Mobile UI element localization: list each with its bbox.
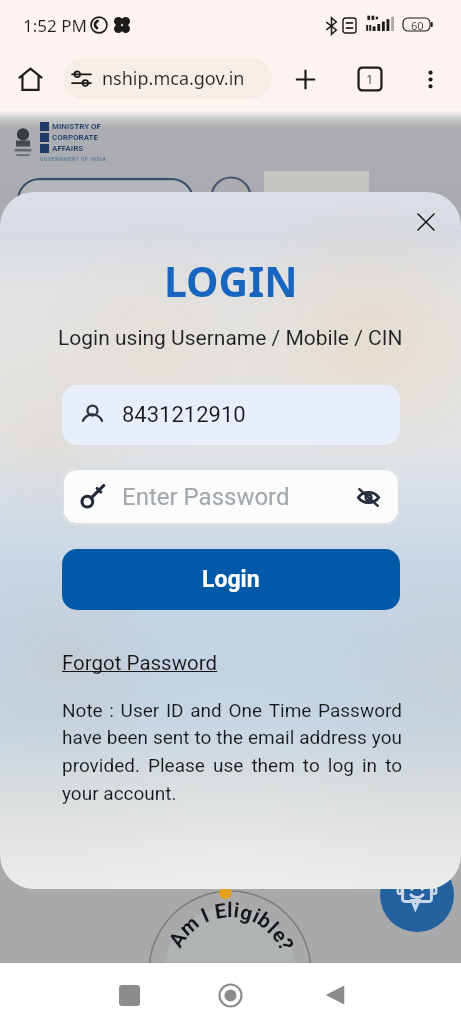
button[interactable]: Back: [309, 969, 361, 1021]
staticText: AFFAIRS: [52, 144, 84, 153]
button[interactable]: Tabs: [348, 57, 392, 101]
button[interactable]: Enter Password: [62, 468, 400, 525]
button[interactable]: nship.mca.gov.in: [63, 58, 272, 99]
staticText: 1:52 PM: [23, 14, 87, 37]
button[interactable]: More options: [408, 57, 452, 101]
staticText: Login using Username / Mobile / CIN: [58, 326, 403, 351]
staticText: Enter Password: [122, 483, 352, 511]
staticText: CORPORATE: [52, 133, 99, 142]
staticText: GOVERNMENT OF INDIA: [40, 156, 107, 162]
button[interactable]: Home: [8, 57, 53, 102]
staticText: 1: [366, 70, 374, 88]
button[interactable]: 8431212910: [62, 385, 400, 445]
button[interactable]: Login: [62, 549, 400, 610]
button[interactable]: Close: [403, 199, 448, 244]
staticText: 60: [411, 18, 424, 31]
staticText: nship.mca.gov.in: [102, 66, 245, 91]
staticText: LOGIN: [164, 253, 298, 309]
button[interactable]: Recent apps: [103, 969, 155, 1021]
button[interactable]: Show password: [352, 481, 384, 513]
staticText: 8431212910: [122, 402, 246, 428]
button[interactable]: New tab: [283, 57, 327, 101]
button[interactable]: Chat bot: [380, 858, 454, 932]
button[interactable]: Forgot Password: [62, 651, 218, 675]
button[interactable]: Home: [204, 969, 256, 1021]
staticText: Login: [202, 566, 260, 593]
staticText: Note : User ID and One Time Password hav…: [62, 699, 402, 805]
staticText: MINISTRY OF: [52, 122, 101, 131]
